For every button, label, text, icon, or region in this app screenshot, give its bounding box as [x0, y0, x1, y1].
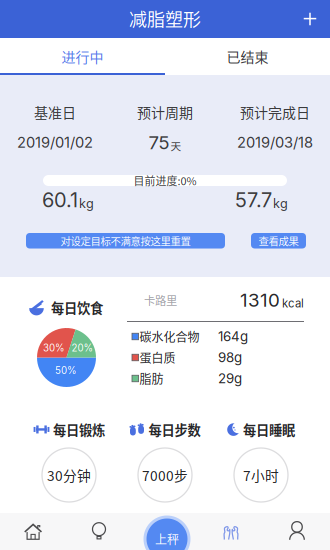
staticText: kcal — [282, 297, 304, 310]
staticText: 碳水化合物 — [139, 328, 199, 345]
staticText: 进行中 — [61, 46, 103, 67]
staticText: 每日锻炼 — [53, 420, 105, 439]
staticText: 20% — [71, 342, 93, 354]
staticText: 1310 — [240, 289, 280, 311]
button[interactable]: Add plan — [290, 0, 330, 38]
button[interactable]: 进行中 — [0, 38, 165, 75]
button[interactable]: Profile — [264, 513, 330, 550]
staticText: kg — [273, 196, 288, 211]
staticText: 30分钟 — [47, 465, 91, 485]
staticText: 30% — [43, 342, 65, 354]
staticText: 29g — [218, 370, 242, 386]
staticText: 每日步数 — [148, 420, 200, 439]
staticText: 每日饮食 — [51, 298, 103, 317]
staticText: 164g — [218, 328, 248, 344]
staticText: 减脂塑形 — [129, 5, 201, 32]
staticText: 预计完成日 — [240, 102, 310, 122]
staticText: 蛋白质 — [139, 349, 175, 366]
staticText: 已结束 — [226, 46, 268, 67]
staticText: 对设定目标不满意按这里重置 — [60, 233, 190, 248]
staticText: 查看成果 — [258, 233, 298, 248]
staticText: kg — [79, 196, 94, 211]
staticText: 天 — [170, 138, 181, 153]
button[interactable]: 查看成果 — [251, 233, 306, 248]
staticText: 每日睡眠 — [243, 420, 295, 439]
button[interactable]: 已结束 — [165, 38, 330, 75]
staticText: 57.7 — [235, 188, 272, 212]
button[interactable]: Workout — [198, 513, 264, 550]
staticText: 上秤 — [155, 530, 179, 548]
staticText: 目前进度:0% — [133, 173, 196, 188]
button[interactable]: Home — [0, 513, 66, 550]
staticText: 卡路里 — [144, 292, 177, 308]
button[interactable]: Tips — [66, 513, 132, 550]
button[interactable]: 对设定目标不满意按这里重置 — [26, 233, 225, 248]
button[interactable]: 上秤 — [143, 515, 190, 550]
staticText: 基准日 — [34, 102, 76, 122]
staticText: 50% — [55, 365, 77, 376]
staticText: 2019/01/02 — [17, 134, 93, 151]
staticText: 7000步 — [142, 465, 188, 485]
staticText: 2019/03/18 — [237, 134, 313, 151]
staticText: 脂肪 — [139, 370, 163, 387]
staticText: 75 — [148, 131, 169, 154]
staticText: 7小时 — [243, 465, 279, 485]
staticText: 98g — [218, 349, 242, 365]
staticText: 60.1 — [42, 188, 78, 212]
staticText: 预计周期 — [137, 102, 193, 122]
